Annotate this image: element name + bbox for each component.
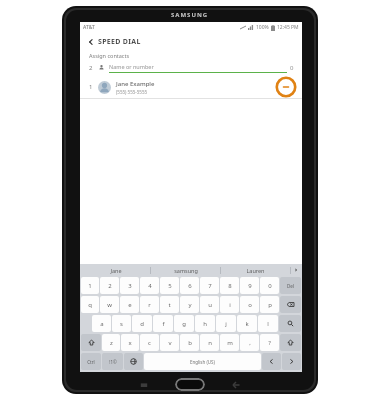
staticText: 1: [88, 282, 92, 290]
button[interactable]: 3: [120, 277, 139, 294]
button[interactable]: Jane: [81, 264, 150, 276]
staticText: (555) 555-5555: [116, 89, 148, 95]
button[interactable]: Back: [84, 35, 98, 49]
other: Back: [231, 381, 241, 389]
button[interactable]: i: [220, 296, 239, 313]
button[interactable]: 7: [200, 277, 219, 294]
staticText: g: [182, 320, 186, 328]
button[interactable]: 5: [160, 277, 179, 294]
button[interactable]: w: [100, 296, 119, 313]
button[interactable]: h: [195, 315, 215, 332]
staticText: q: [88, 301, 92, 309]
staticText: m: [227, 339, 233, 347]
staticText: w: [107, 301, 112, 309]
button[interactable]: Home: [175, 378, 205, 391]
staticText: Del: [287, 283, 294, 289]
button[interactable]: 1: [81, 277, 99, 294]
button[interactable]: b: [180, 334, 199, 351]
button[interactable]: 2: [80, 60, 302, 75]
button[interactable]: n: [200, 334, 219, 351]
staticText: AT&T: [83, 24, 95, 31]
staticText: English (US): [190, 359, 215, 365]
staticText: d: [140, 320, 144, 328]
button[interactable]: a: [92, 315, 111, 332]
staticText: 0: [268, 282, 272, 290]
staticText: Assign contacts: [89, 52, 130, 59]
button[interactable]: d: [132, 315, 152, 332]
staticText: 1: [89, 83, 98, 91]
staticText: 100%: [256, 24, 269, 31]
staticText: i: [229, 301, 231, 309]
staticText: SAMSUNG: [171, 11, 209, 19]
staticText: f: [162, 320, 165, 328]
button[interactable]: r: [140, 296, 159, 313]
other: Recents: [139, 381, 149, 389]
staticText: y: [188, 301, 192, 309]
button[interactable]: 4: [140, 277, 159, 294]
button[interactable]: samsung: [151, 264, 220, 276]
staticText: 0: [290, 64, 294, 72]
staticText: 6: [188, 282, 192, 290]
button[interactable]: 2: [100, 277, 119, 294]
button[interactable]: 8: [220, 277, 239, 294]
staticText: 5: [168, 282, 172, 290]
button[interactable]: v: [160, 334, 179, 351]
button[interactable]: 1: [80, 75, 302, 99]
staticText: samsung: [174, 267, 198, 274]
button[interactable]: shift: [280, 334, 301, 351]
button[interactable]: o: [240, 296, 259, 313]
staticText: z: [110, 339, 113, 347]
button[interactable]: c: [140, 334, 159, 351]
staticText: 4: [148, 282, 152, 290]
button[interactable]: j: [216, 315, 236, 332]
button[interactable]: f: [153, 315, 173, 332]
staticText: s: [120, 320, 123, 328]
button[interactable]: 0: [260, 277, 279, 294]
staticText: v: [168, 339, 172, 347]
button[interactable]: 9: [240, 277, 259, 294]
button[interactable]: English (US): [144, 353, 261, 370]
button[interactable]: ?: [260, 334, 279, 351]
button[interactable]: p: [260, 296, 279, 313]
button[interactable]: 6: [180, 277, 199, 294]
staticText: h: [203, 320, 207, 328]
staticText: u: [208, 301, 212, 309]
button[interactable]: s: [112, 315, 131, 332]
button[interactable]: m: [220, 334, 239, 351]
staticText: Jane: [110, 267, 122, 274]
staticText: 7: [208, 282, 212, 290]
staticText: t: [168, 301, 171, 309]
button[interactable]: z: [102, 334, 120, 351]
button[interactable]: k: [237, 315, 257, 332]
button[interactable]: More suggestions: [291, 264, 301, 276]
button[interactable]: y: [180, 296, 199, 313]
button[interactable]: right: [282, 353, 301, 370]
button[interactable]: Del: [280, 277, 301, 294]
button[interactable]: t: [160, 296, 179, 313]
staticText: Ctrl: [87, 359, 95, 365]
button[interactable]: Lauren: [221, 264, 290, 276]
button[interactable]: globe: [124, 353, 143, 370]
button[interactable]: !1©: [102, 353, 123, 370]
button[interactable]: Ctrl: [81, 353, 101, 370]
staticText: x: [128, 339, 132, 347]
staticText: 9: [248, 282, 252, 290]
button[interactable]: shift: [81, 334, 101, 351]
staticText: r: [148, 301, 151, 309]
staticText: Jane Example: [116, 80, 155, 88]
button[interactable]: g: [174, 315, 194, 332]
button[interactable]: l: [258, 315, 278, 332]
button[interactable]: search: [279, 315, 301, 332]
button[interactable]: e: [120, 296, 139, 313]
button[interactable]: Remove contact: [275, 76, 297, 98]
staticText: SPEED DIAL: [98, 37, 141, 47]
button[interactable]: u: [200, 296, 219, 313]
button[interactable]: q: [81, 296, 99, 313]
button[interactable]: x: [121, 334, 139, 351]
staticText: 3: [128, 282, 132, 290]
button[interactable]: backspace: [280, 296, 301, 313]
button[interactable]: left: [262, 353, 281, 370]
button[interactable]: ,: [240, 334, 259, 351]
staticText: 2: [89, 64, 98, 72]
staticText: 8: [228, 282, 232, 290]
